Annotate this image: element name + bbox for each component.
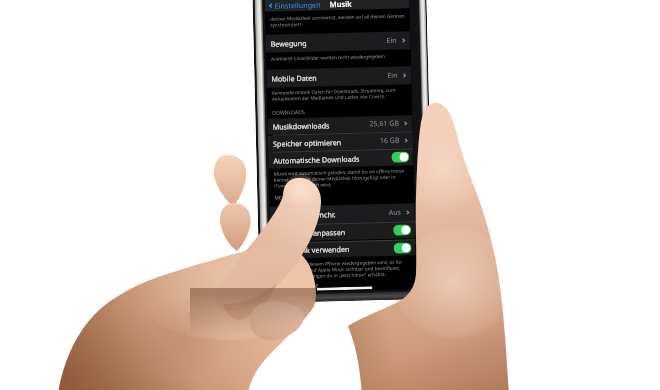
staticText: HEIMATFREIGABE (276, 283, 320, 291)
staticText: Ein (387, 71, 398, 81)
staticText: Automatische Downloads (273, 154, 360, 166)
staticText: Mediathek synchr. (275, 209, 336, 221)
button[interactable]: Speicher optimieren (268, 132, 413, 152)
staticText: denner Mediathek vornimmst, werden auf a… (270, 12, 405, 28)
staticText: 25,61 GB (369, 119, 400, 129)
button[interactable]: Mediathek anpassen (270, 221, 415, 242)
staticText: 16 GB (380, 136, 400, 146)
button[interactable]: Einstellungen (264, 0, 323, 12)
button[interactable]: Musikdownloads (267, 115, 413, 135)
staticText: Mobile Daten (271, 73, 317, 84)
staticText: Verwende mobile Daten für Downloads, Str… (272, 87, 396, 102)
staticText: Mediathek anpassen (275, 227, 345, 239)
button[interactable]: Toggle (393, 224, 411, 236)
button[interactable]: Mediathek synchr. (269, 203, 415, 225)
button[interactable]: Bewegung (265, 31, 411, 53)
staticText: Musik (329, 0, 352, 9)
button[interactable]: Toggle (393, 242, 412, 254)
staticText: Mobilfunk verwenden (275, 244, 350, 256)
staticText: Bewegung (270, 38, 308, 49)
staticText: Animierte Coverbilder werden nicht wiede… (271, 53, 387, 62)
staticText: Ein (386, 36, 398, 46)
button[interactable]: Mobilfunk verwenden (270, 239, 416, 259)
button[interactable]: Toggle (391, 151, 409, 163)
staticText: Einstellungen (274, 0, 321, 11)
staticText: Aus (389, 208, 402, 218)
staticText: MEDIATHEK (274, 194, 303, 202)
staticText: Musik wird automatisch geladen, damit du… (274, 167, 405, 189)
staticText: DOWNLOADS (272, 109, 305, 117)
staticText: Speicher optimieren (273, 137, 342, 149)
staticText: Musik, die auf diesem iPhone wiedergegeb… (276, 259, 403, 280)
button[interactable]: Mobile Daten (266, 66, 412, 88)
button[interactable]: Automatische Downloads (268, 148, 414, 169)
staticText: Musikdownloads (272, 120, 330, 132)
